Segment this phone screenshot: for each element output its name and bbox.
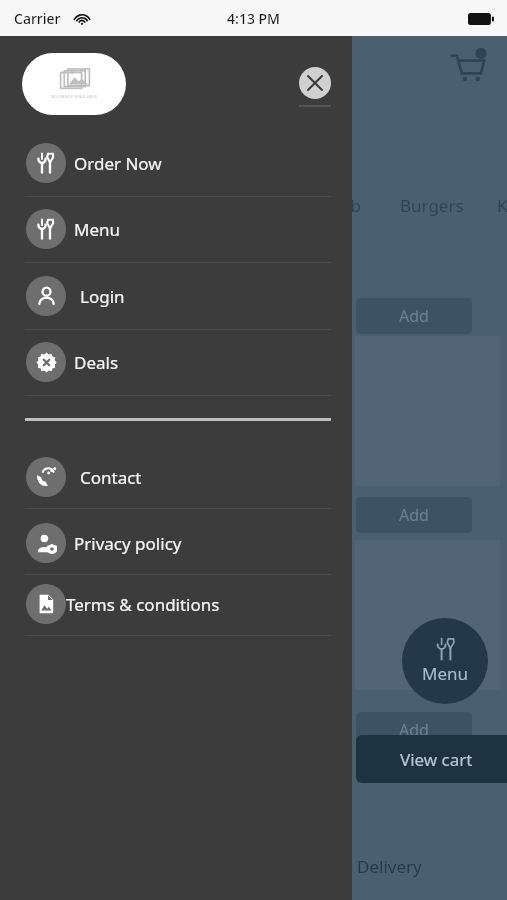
staticText: Terms & conditions — [66, 593, 220, 616]
staticText: Deals — [74, 351, 119, 374]
button[interactable]: Close — [299, 67, 331, 99]
button[interactable]: Login — [0, 266, 352, 326]
staticText: NO IMAGE AVAILABLE — [51, 94, 98, 99]
staticText: Privacy policy — [74, 532, 182, 555]
button[interactable]: Terms & conditions — [0, 574, 352, 634]
button[interactable]: Menu — [402, 618, 488, 704]
button[interactable]: Order Now — [0, 133, 352, 193]
staticText: Add — [399, 504, 429, 526]
button[interactable]: Add — [356, 712, 472, 748]
staticText: Contact — [80, 466, 142, 489]
staticText: K — [497, 194, 507, 217]
button[interactable]: Privacy policy — [0, 513, 352, 573]
staticText: Burgers — [400, 194, 464, 217]
staticText: Login — [80, 285, 125, 308]
staticText: Menu — [422, 662, 469, 685]
staticText: 4:13 PM — [0, 9, 507, 28]
button[interactable]: Contact — [0, 447, 352, 507]
staticText: Add — [399, 305, 429, 327]
button[interactable]: Cart — [449, 47, 493, 91]
staticText: Menu — [74, 218, 121, 241]
button[interactable]: Add — [356, 298, 472, 334]
staticText: View cart — [400, 748, 473, 771]
button[interactable]: Deals — [0, 332, 352, 392]
button[interactable]: View cart — [356, 735, 507, 783]
staticText: Add — [399, 719, 429, 741]
staticText: Order Now — [74, 152, 162, 175]
staticText: ab — [341, 194, 361, 217]
staticText: Delivery — [357, 855, 422, 878]
staticText: Carrier — [14, 9, 61, 28]
button[interactable]: Menu — [0, 199, 352, 259]
button[interactable]: Add — [356, 497, 472, 533]
